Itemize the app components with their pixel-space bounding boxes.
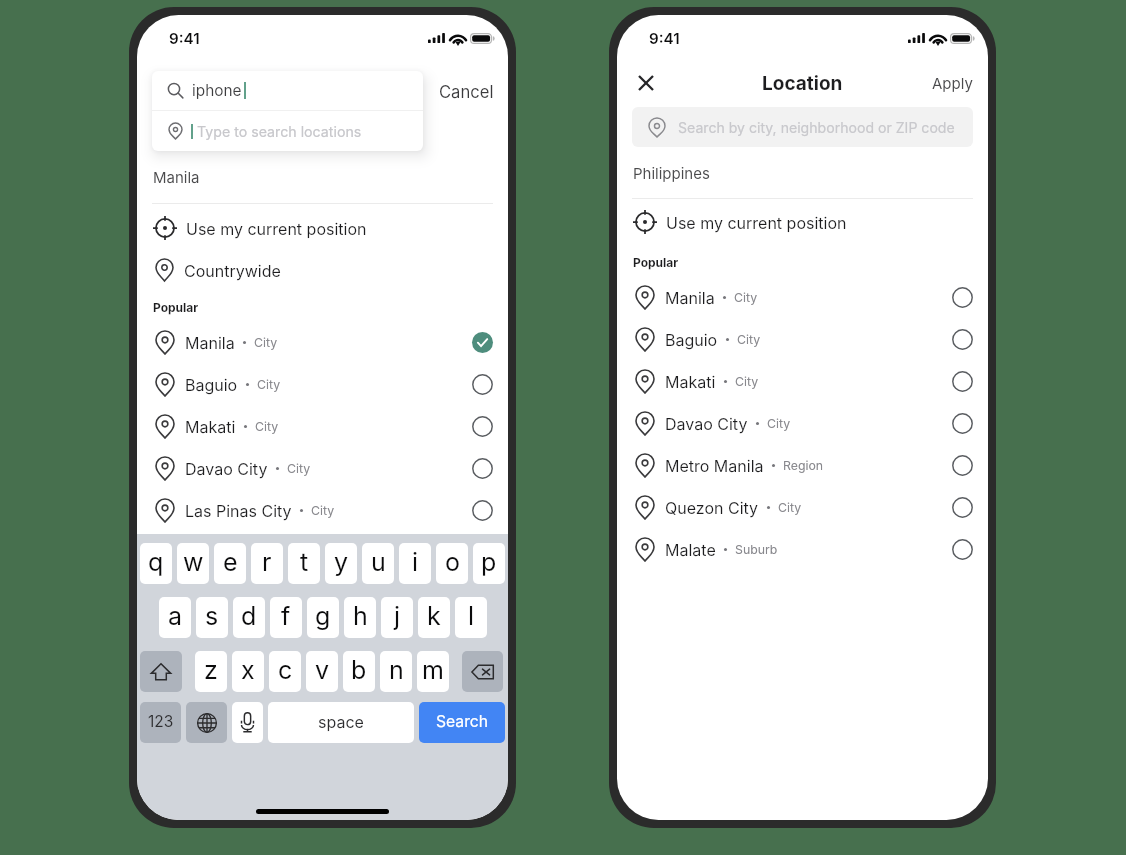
- button[interactable]: k: [418, 597, 450, 638]
- staticText: Philippines: [633, 164, 710, 182]
- button[interactable]: Manila: [137, 321, 508, 363]
- button[interactable]: Backspace: [462, 651, 503, 692]
- button[interactable]: a: [159, 597, 191, 638]
- button[interactable]: n: [380, 651, 412, 692]
- staticText: u: [371, 547, 386, 577]
- button[interactable]: z: [195, 651, 227, 692]
- staticText: Location: [762, 72, 843, 95]
- button[interactable]: r: [251, 543, 283, 584]
- button[interactable]: Davao City: [617, 402, 988, 444]
- staticText: t: [300, 547, 309, 577]
- staticText: p: [481, 547, 497, 577]
- button[interactable]: g: [307, 597, 339, 638]
- staticText: c: [278, 655, 293, 685]
- button[interactable]: Search by city, neighborhood or ZIP code: [632, 107, 973, 147]
- button[interactable]: q: [140, 543, 172, 584]
- button[interactable]: c: [269, 651, 301, 692]
- button[interactable]: Shift: [140, 651, 182, 692]
- staticText: City: [254, 335, 278, 350]
- staticText: n: [389, 655, 404, 685]
- staticText: e: [223, 547, 238, 577]
- button[interactable]: Type to search locations: [152, 111, 423, 151]
- button[interactable]: Manila: [617, 276, 988, 318]
- button[interactable]: 123: [140, 702, 181, 743]
- button[interactable]: y: [325, 543, 357, 584]
- staticText: Makati: [185, 417, 236, 436]
- button[interactable]: e: [214, 543, 246, 584]
- button[interactable]: Search: [419, 702, 505, 743]
- button[interactable]: o: [436, 543, 468, 584]
- button[interactable]: j: [381, 597, 413, 638]
- button[interactable]: l: [455, 597, 487, 638]
- button[interactable]: p: [473, 543, 505, 584]
- button[interactable]: Apply: [929, 71, 976, 95]
- button[interactable]: t: [288, 543, 320, 584]
- staticText: Quezon City: [665, 498, 759, 517]
- staticText: Baguio: [185, 375, 238, 394]
- staticText: Manila: [185, 333, 235, 352]
- staticText: Cancel: [439, 82, 494, 102]
- staticText: o: [445, 547, 460, 577]
- button[interactable]: s: [196, 597, 228, 638]
- button[interactable]: iphone: [152, 71, 423, 110]
- staticText: Makati: [665, 372, 716, 391]
- staticText: Metro Manila: [665, 456, 764, 475]
- button[interactable]: Makati: [617, 360, 988, 402]
- button[interactable]: Close: [633, 70, 659, 96]
- button[interactable]: Baguio: [137, 363, 508, 405]
- button[interactable]: i: [399, 543, 431, 584]
- button[interactable]: Use my current position: [137, 207, 508, 249]
- button[interactable]: w: [177, 543, 209, 584]
- button[interactable]: v: [306, 651, 338, 692]
- button[interactable]: Cancel: [435, 78, 498, 106]
- button[interactable]: h: [344, 597, 376, 638]
- button[interactable]: Las Pinas City: [137, 489, 508, 531]
- button[interactable]: Quezon City: [617, 486, 988, 528]
- button[interactable]: Metro Manila: [617, 444, 988, 486]
- button[interactable]: b: [343, 651, 375, 692]
- staticText: m: [422, 655, 444, 685]
- button[interactable]: x: [232, 651, 264, 692]
- button[interactable]: d: [233, 597, 265, 638]
- staticText: Search: [436, 712, 489, 731]
- staticText: Search by city, neighborhood or ZIP code: [678, 119, 955, 136]
- button[interactable]: m: [417, 651, 449, 692]
- staticText: City: [737, 332, 761, 347]
- staticText: City: [287, 461, 311, 476]
- button[interactable]: Baguio: [617, 318, 988, 360]
- staticText: City: [734, 290, 758, 305]
- button[interactable]: f: [270, 597, 302, 638]
- button[interactable]: Voice input: [232, 702, 263, 743]
- staticText: City: [767, 416, 791, 431]
- staticText: City: [735, 374, 759, 389]
- staticText: space: [318, 712, 364, 731]
- staticText: City: [255, 419, 279, 434]
- staticText: Suburb: [735, 542, 778, 557]
- staticText: Davao City: [185, 459, 268, 478]
- staticText: Manila: [665, 288, 715, 307]
- button[interactable]: space: [268, 702, 414, 743]
- staticText: Use my current position: [186, 219, 367, 238]
- staticText: y: [334, 547, 349, 577]
- staticText: l: [468, 601, 475, 631]
- staticText: x: [241, 655, 255, 685]
- button[interactable]: Countrywide: [137, 249, 508, 291]
- staticText: Apply: [932, 74, 973, 92]
- staticText: v: [315, 655, 330, 685]
- staticText: s: [205, 601, 219, 631]
- staticText: Countrywide: [184, 261, 281, 280]
- staticText: Malate: [665, 540, 716, 559]
- staticText: a: [168, 601, 183, 631]
- button[interactable]: Change keyboard: [186, 702, 227, 743]
- button[interactable]: Malate: [617, 528, 988, 570]
- button[interactable]: u: [362, 543, 394, 584]
- staticText: Region: [783, 458, 824, 473]
- staticText: b: [351, 655, 367, 685]
- staticText: h: [353, 601, 368, 631]
- button[interactable]: Davao City: [137, 447, 508, 489]
- staticText: Popular: [153, 300, 199, 315]
- staticText: g: [315, 601, 331, 631]
- staticText: 9:41: [649, 29, 680, 47]
- button[interactable]: Use my current position: [617, 201, 988, 243]
- button[interactable]: Makati: [137, 405, 508, 447]
